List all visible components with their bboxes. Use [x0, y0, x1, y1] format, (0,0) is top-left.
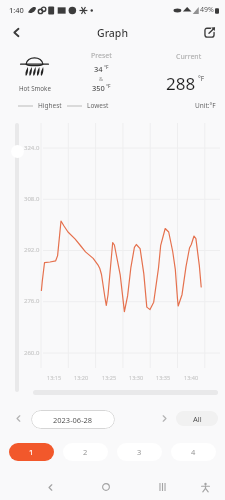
staticText: 324.0	[24, 144, 40, 152]
button[interactable]: Previous day	[8, 408, 28, 428]
button[interactable]: All	[176, 411, 218, 426]
staticText: °F	[106, 83, 111, 90]
staticText: 34	[94, 64, 103, 74]
staticText: 13:40	[184, 374, 199, 381]
button[interactable]: 2	[63, 443, 108, 461]
staticText: 292.0	[24, 246, 40, 254]
staticText: 13:30	[129, 374, 144, 381]
button[interactable]: Back	[5, 21, 27, 43]
button[interactable]: Next day	[154, 408, 174, 428]
staticText: 308.0	[24, 195, 40, 203]
staticText: 350	[92, 83, 105, 93]
staticText: 1	[29, 447, 34, 457]
button[interactable]: 2023-06-28	[31, 410, 115, 429]
staticText: Lowest	[87, 101, 109, 110]
staticText: &	[99, 75, 104, 82]
staticText: 260.0	[24, 349, 40, 357]
staticText: 4	[191, 447, 196, 457]
staticText: 13:15	[47, 374, 62, 381]
staticText: 2023-06-28	[53, 415, 93, 425]
button[interactable]: 1	[9, 443, 54, 461]
staticText: 1:40	[9, 5, 24, 15]
staticText: 49%	[200, 5, 214, 15]
staticText: Unit:°F	[195, 101, 216, 110]
staticText: 276.0	[24, 297, 40, 305]
staticText: Hot Smoke	[19, 84, 51, 92]
staticText: °F	[198, 74, 205, 83]
button[interactable]: 3	[117, 443, 162, 461]
button[interactable]: 4	[171, 443, 216, 461]
staticText: Graph	[97, 26, 128, 40]
staticText: 2	[83, 447, 88, 457]
staticText: 13:20	[74, 374, 89, 381]
button[interactable]: Share	[198, 21, 220, 43]
button[interactable]: Accessibility	[195, 477, 215, 497]
staticText: Current	[176, 52, 202, 62]
staticText: Highest	[38, 101, 62, 110]
button[interactable]: Home	[96, 477, 116, 497]
staticText: All	[193, 414, 202, 424]
staticText: 3	[137, 447, 142, 457]
button[interactable]: Recents	[152, 477, 172, 497]
staticText: 13:35	[156, 374, 171, 381]
staticText: 13:25	[102, 374, 117, 381]
button[interactable]: Back	[40, 477, 60, 497]
staticText: °F	[104, 64, 109, 71]
staticText: 288	[166, 72, 196, 95]
staticText: Preset	[91, 51, 112, 61]
